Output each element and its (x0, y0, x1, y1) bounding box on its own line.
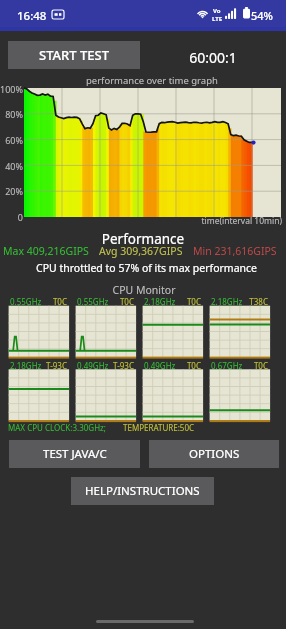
staticText: 0 (0, 211, 23, 223)
staticText: CPU Monitor (44, 283, 244, 297)
staticText: Min 231,616GIPS (193, 244, 277, 258)
staticText: LTE (212, 15, 223, 23)
staticText: T0C (37, 296, 67, 307)
staticText: Performance (43, 230, 243, 248)
button[interactable]: TEST JAVA/C (9, 440, 140, 468)
staticText: 0.55GHz (77, 296, 109, 307)
staticText: T-93C (37, 360, 67, 371)
staticText: TEST JAVA/C (43, 446, 107, 462)
staticText: T38C (238, 296, 268, 307)
staticText: performance over time graph (86, 74, 218, 87)
staticText: 2.18GHz (211, 296, 243, 307)
staticText: T0C (238, 360, 268, 371)
staticText: T-93C (104, 360, 134, 371)
staticText: T0C (104, 296, 134, 307)
staticText: HELP/INSTRUCTIONS (85, 483, 200, 499)
staticText: 54% (251, 8, 273, 23)
staticText: TEMPERATURE:50C (123, 422, 195, 433)
staticText: time(interval 10min) (186, 215, 282, 227)
staticText: OPTIONS (189, 446, 240, 462)
button[interactable]: START TEST (8, 41, 140, 69)
staticText: 0.55GHz (10, 296, 42, 307)
staticText: MAX CPU CLOCK:3.30GHz; (8, 422, 106, 433)
staticText: 0.49GHz (77, 360, 109, 371)
staticText: Avg 309,367GIPS (99, 244, 183, 258)
staticText: 20% (0, 185, 23, 197)
staticText: START TEST (39, 46, 109, 64)
staticText: Max 409,216GIPS (3, 244, 89, 258)
staticText: 0.67GHz (211, 360, 243, 371)
staticText: 16:48 (17, 8, 47, 24)
staticText: 60% (0, 134, 23, 146)
staticText: 100% (0, 83, 23, 95)
staticText: 80% (0, 108, 23, 120)
staticText: 40% (0, 160, 23, 172)
staticText: T0C (171, 360, 201, 371)
staticText: 60:00:1 (163, 48, 263, 67)
staticText: 0.49GHz (144, 360, 176, 371)
button[interactable]: OPTIONS (149, 440, 279, 468)
staticText: 2.18GHz (10, 360, 42, 371)
staticText: T0C (171, 296, 201, 307)
button[interactable]: HELP/INSTRUCTIONS (71, 477, 214, 505)
staticText: CPU throttled to 57% of its max performa… (23, 261, 270, 275)
staticText: 2.18GHz (144, 296, 176, 307)
staticText: Vo (213, 7, 221, 15)
